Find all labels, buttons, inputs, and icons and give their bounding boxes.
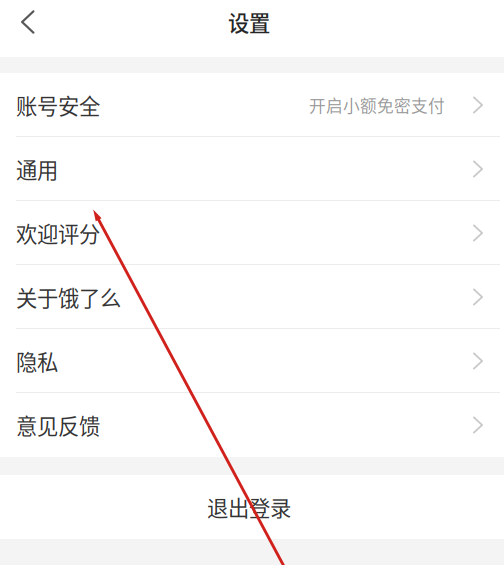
staticText: 账号安全 <box>16 90 100 120</box>
button[interactable]: Back <box>0 0 53 44</box>
button[interactable]: 关于饿了么 <box>0 265 504 329</box>
button[interactable]: 隐私 <box>0 329 504 393</box>
staticText: 开启小额免密支付 <box>309 93 445 117</box>
staticText: 通用 <box>16 154 58 184</box>
staticText: 退出登录 <box>207 492 291 522</box>
button[interactable]: 通用 <box>0 137 504 201</box>
button[interactable]: 账号安全 <box>0 73 504 137</box>
button[interactable]: 退出登录 <box>0 475 504 539</box>
staticText: 关于饿了么 <box>16 282 121 312</box>
staticText: 欢迎评分 <box>16 218 100 248</box>
button[interactable]: 意见反馈 <box>0 393 504 457</box>
staticText: 隐私 <box>16 346 58 376</box>
button[interactable]: 欢迎评分 <box>0 201 504 265</box>
staticText: 意见反馈 <box>16 410 100 440</box>
staticText: 设置 <box>228 7 270 37</box>
